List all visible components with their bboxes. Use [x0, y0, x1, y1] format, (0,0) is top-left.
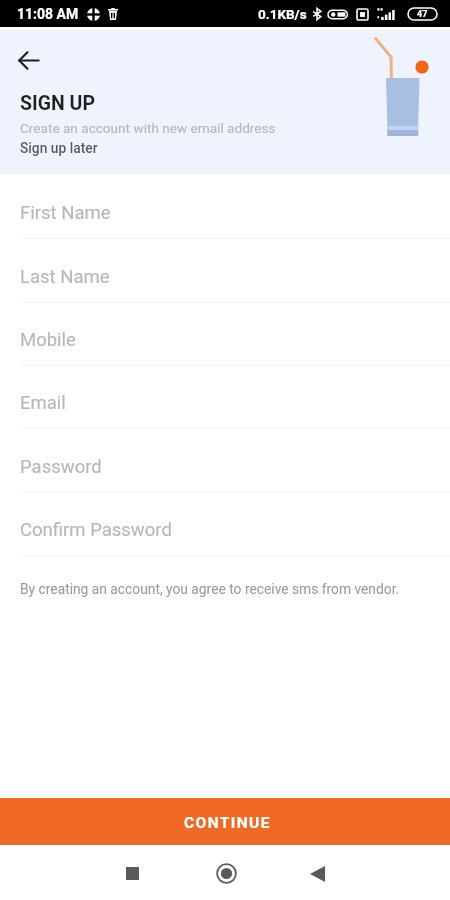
- button[interactable]: Back: [295, 852, 339, 896]
- staticText: Confirm Password: [20, 519, 172, 541]
- staticText: First Name: [20, 202, 111, 224]
- button[interactable]: Confirm Password: [0, 493, 450, 556]
- button[interactable]: Email: [0, 366, 450, 429]
- staticText: Last Name: [20, 266, 110, 288]
- staticText: CONTINUE: [184, 814, 271, 832]
- staticText: By creating an account, you agree to rec…: [20, 581, 400, 597]
- button[interactable]: Recent apps: [110, 851, 154, 895]
- button[interactable]: Back: [8, 40, 48, 80]
- staticText: 0.1KB/s: [258, 6, 307, 22]
- button[interactable]: Last Name: [0, 239, 450, 303]
- button[interactable]: Home: [204, 851, 248, 895]
- staticText: Create an account with new email address: [20, 120, 276, 136]
- button[interactable]: Sign up later: [20, 140, 98, 156]
- staticText: Password: [20, 456, 102, 478]
- staticText: 47: [417, 9, 428, 20]
- button[interactable]: Password: [0, 429, 450, 493]
- button[interactable]: Mobile: [0, 303, 450, 366]
- button[interactable]: First Name: [0, 174, 450, 239]
- staticText: SIGN UP: [20, 92, 96, 115]
- button[interactable]: CONTINUE: [0, 798, 450, 845]
- staticText: Mobile: [20, 329, 76, 351]
- staticText: Email: [20, 392, 66, 414]
- staticText: 11:08 AM: [17, 6, 79, 22]
